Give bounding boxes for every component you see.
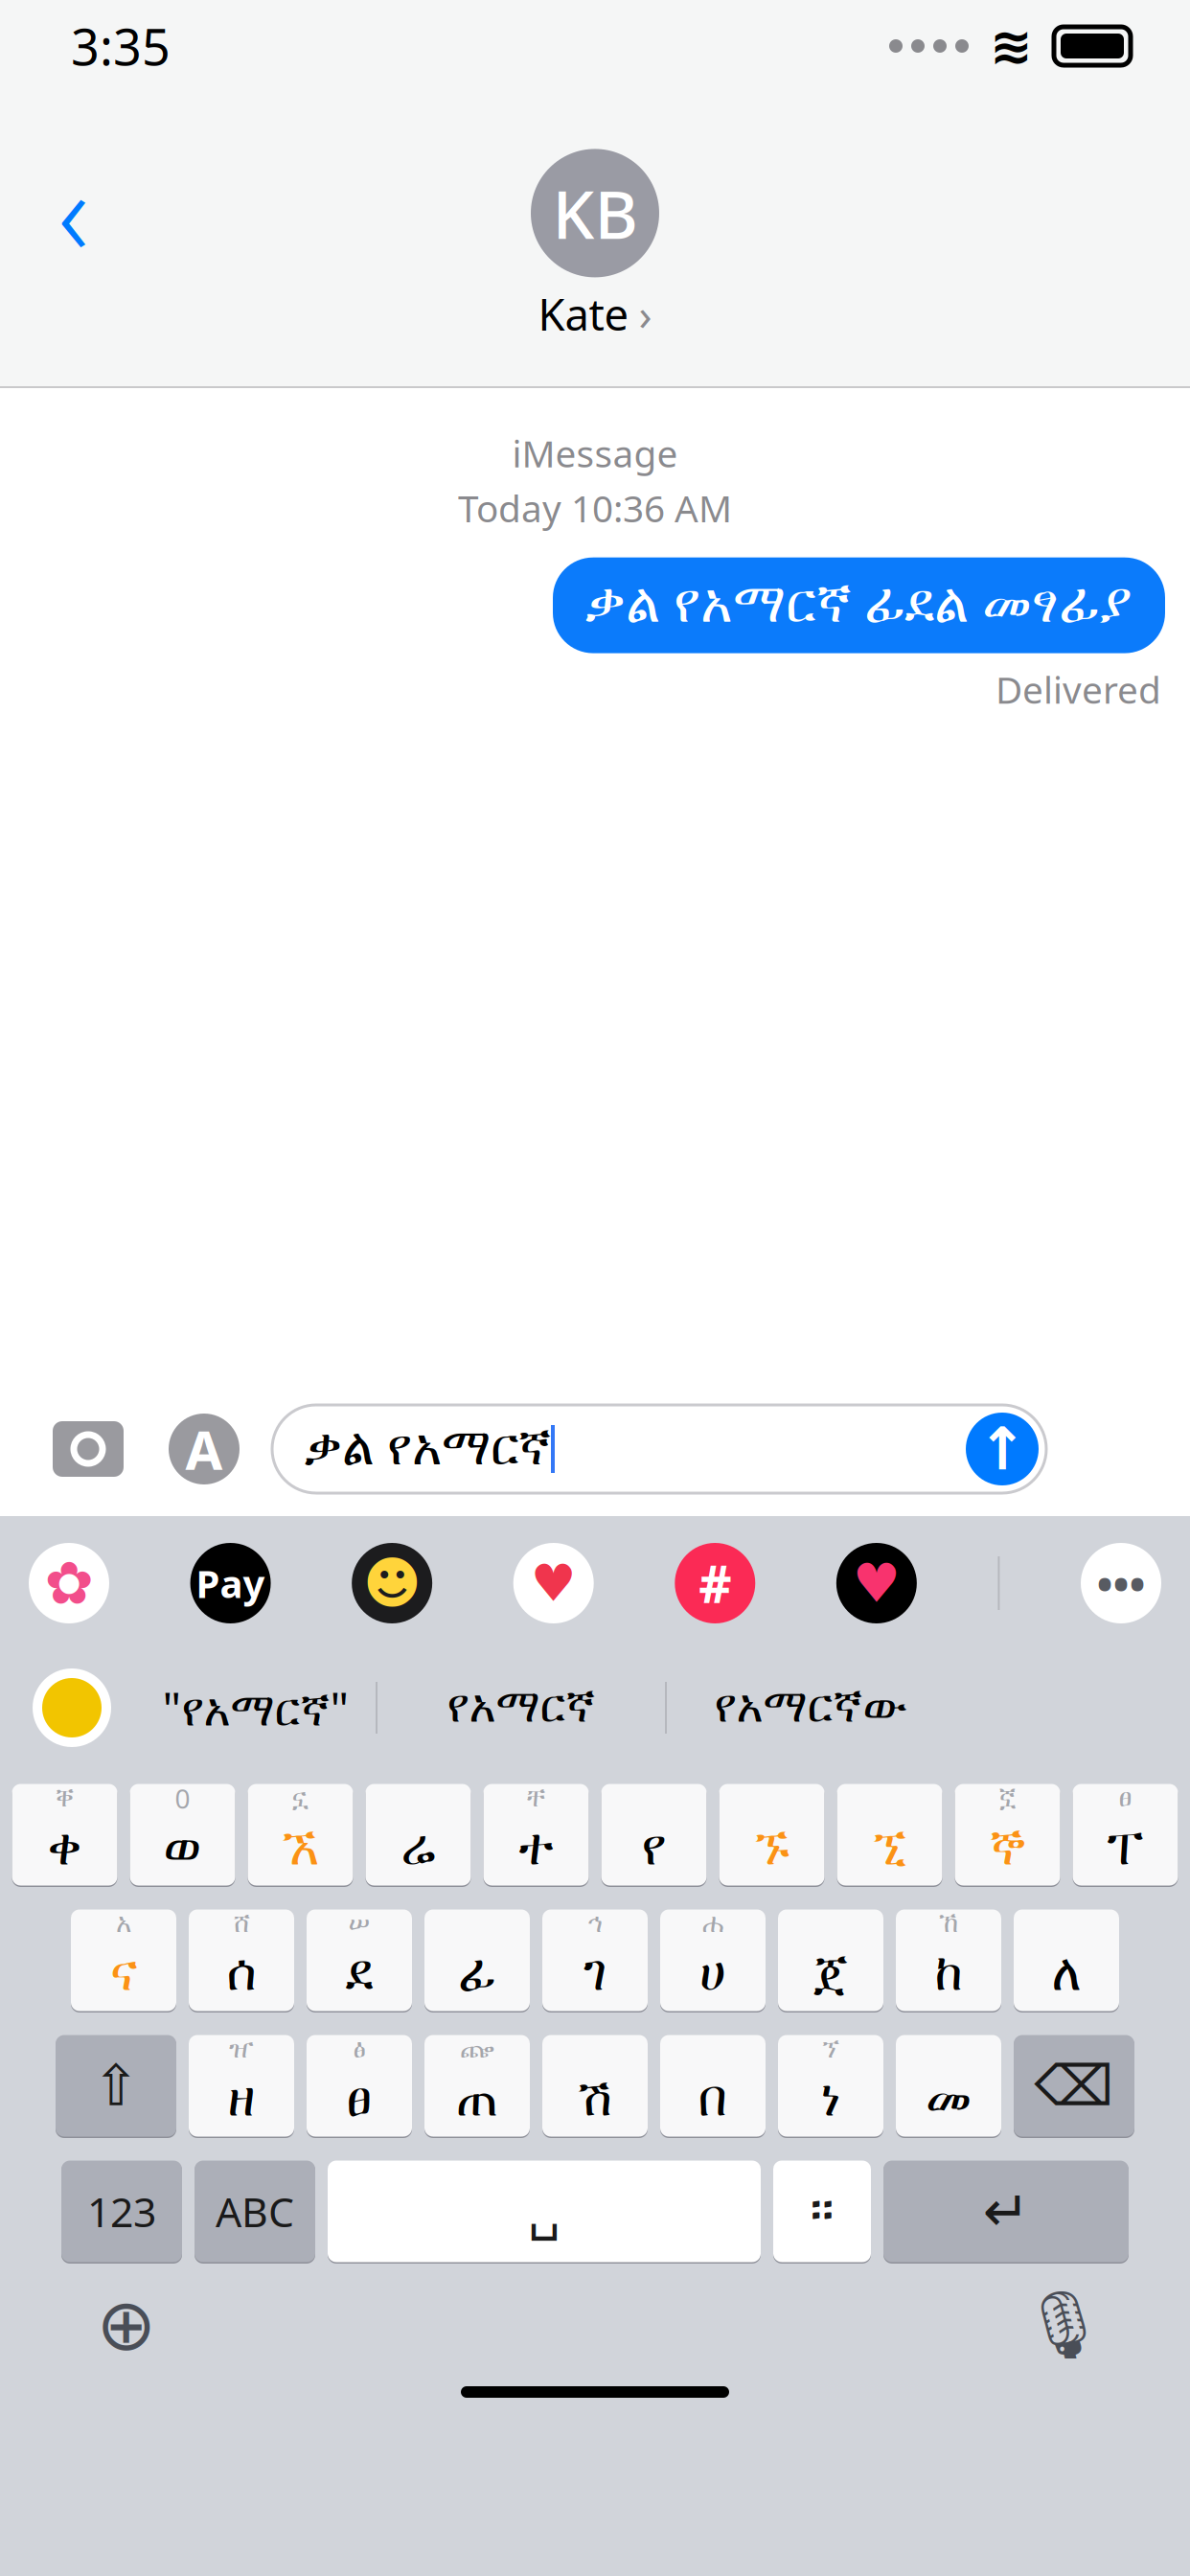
button[interactable] [837, 1782, 942, 1887]
staticText: ጀ [813, 1950, 848, 2000]
button[interactable]: Memoji stickers [513, 1543, 594, 1623]
staticText: ≋ [990, 17, 1033, 75]
button[interactable] [542, 2034, 648, 2138]
button[interactable]: ኘ [778, 2034, 883, 2138]
button[interactable]: ቸ [483, 1782, 589, 1887]
staticText: ♥ [853, 1553, 901, 1614]
staticText: አ [116, 1911, 131, 1937]
button[interactable]: Kate [532, 285, 658, 343]
button[interactable]: 0 [130, 1782, 235, 1887]
button[interactable]: ሠ [307, 1908, 412, 2012]
button[interactable] [1014, 1908, 1119, 2012]
button[interactable]: Apple Pay [190, 1543, 271, 1623]
staticText: Delivered [995, 665, 1161, 714]
staticText: ␣ [528, 2182, 561, 2240]
staticText: ነ [821, 2075, 841, 2125]
staticText: ኟ [999, 1785, 1016, 1811]
staticText: › [639, 285, 652, 343]
staticText: Pay [196, 1558, 265, 1609]
button[interactable]: አ [71, 1908, 176, 2012]
staticText: ዘ [228, 2075, 255, 2125]
staticText: ☻ [363, 1551, 421, 1615]
button[interactable]: Return [883, 2159, 1129, 2264]
staticText: ••• [1097, 1554, 1145, 1612]
staticText: ሰ [227, 1950, 256, 2000]
button[interactable]: ኸ [896, 1908, 1001, 2012]
staticText: ዠ [229, 2036, 254, 2062]
staticText: ቃል የአማርኛ ፊደል መፃፊያ [585, 579, 1133, 632]
button[interactable]: ኟ [955, 1782, 1060, 1887]
staticText: 123 [87, 2184, 156, 2239]
staticText: ደ [345, 1950, 373, 2000]
button[interactable]: Keyboard language [33, 1668, 111, 1747]
staticText: 0 [175, 1780, 190, 1816]
staticText: KB [552, 169, 638, 257]
button[interactable]: ኗ [248, 1782, 353, 1887]
staticText: ⌫ [1034, 2054, 1114, 2118]
button[interactable] [896, 2034, 1001, 2138]
staticText: ጬ [460, 2036, 494, 2062]
button[interactable]: Memoji camera [352, 1543, 432, 1623]
staticText: የ [641, 1824, 666, 1874]
button[interactable]: ሐ [660, 1908, 766, 2012]
staticText: መ [926, 2075, 972, 2125]
button[interactable]: Camera [42, 1414, 134, 1484]
button[interactable] [424, 1908, 530, 2012]
button[interactable]: ጬ [424, 2034, 530, 2138]
staticText: ኅ [587, 1911, 603, 1937]
staticText: በ [698, 2075, 728, 2125]
staticText: ኸ [938, 1911, 959, 1937]
button[interactable] [601, 1782, 707, 1887]
button[interactable]: Dictate [1018, 2279, 1110, 2371]
staticText: ኞ [990, 1824, 1025, 1874]
button[interactable]: የአማርኛው [667, 1665, 954, 1751]
staticText: ። [810, 2186, 834, 2236]
staticText: ሐ [702, 1911, 723, 1937]
button[interactable]: ፀ [1073, 1782, 1178, 1887]
staticText: ኧ [282, 1824, 319, 1874]
staticText: ሽ [578, 2075, 612, 2125]
button[interactable]: Delete [1014, 2034, 1134, 2138]
button[interactable]: Next keyboard [80, 2279, 172, 2371]
button[interactable]: Space [328, 2159, 761, 2264]
button[interactable]: ቐ [12, 1782, 117, 1887]
button[interactable]: Kate, contact photo [531, 149, 659, 277]
button[interactable]: Send [966, 1413, 1039, 1485]
staticText: ፊ [458, 1950, 496, 2000]
staticText: # [699, 1549, 731, 1617]
staticText: Today 10:36 AM [458, 483, 732, 532]
button[interactable] [660, 2034, 766, 2138]
staticText: ቸ [527, 1785, 545, 1811]
button[interactable]: Images [675, 1543, 755, 1623]
staticText: ወ [163, 1824, 202, 1874]
button[interactable]: Back [21, 158, 126, 263]
staticText: ኙ [755, 1824, 789, 1874]
staticText: ✿ [45, 1550, 93, 1617]
button[interactable]: Photos [29, 1543, 109, 1623]
button[interactable]: Punctuation [773, 2159, 871, 2264]
button[interactable] [719, 1782, 824, 1887]
staticText: Kate [538, 285, 629, 343]
staticText: ሀ [699, 1950, 726, 2000]
button[interactable]: ፅ [307, 2034, 412, 2138]
button[interactable]: "የአማርኛ" [136, 1665, 376, 1751]
staticText: የአማርኛው [714, 1685, 907, 1730]
staticText: 🎙 [1021, 2287, 1106, 2363]
staticText: ♥ [531, 1554, 577, 1612]
button[interactable]: More [1081, 1543, 1161, 1623]
button[interactable]: Shift [56, 2034, 176, 2138]
button[interactable]: App Store [169, 1414, 240, 1484]
button[interactable]: ሸ [189, 1908, 294, 2012]
button[interactable]: ኅ [542, 1908, 648, 2012]
button[interactable]: ዠ [189, 2034, 294, 2138]
button[interactable]: Digital Touch [836, 1543, 917, 1623]
button[interactable]: 123 [61, 2159, 182, 2264]
button[interactable] [366, 1782, 471, 1887]
staticText: ተ [519, 1824, 553, 1874]
staticText: ለ [1052, 1950, 1081, 2000]
staticText: ሬ [401, 1824, 435, 1874]
button[interactable] [778, 1908, 883, 2012]
button[interactable]: የአማርኛ [378, 1665, 665, 1751]
staticText: ጠ [456, 2075, 498, 2125]
button[interactable]: ABC [195, 2159, 315, 2264]
